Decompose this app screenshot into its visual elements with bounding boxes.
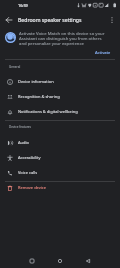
- staticText: Activate Voice Match on this device so y…: [19, 30, 108, 46]
- staticText: General: [9, 65, 21, 69]
- button[interactable]: Recent apps: [25, 254, 39, 268]
- button[interactable]: Activate: [93, 49, 113, 56]
- staticText: Activate: [95, 50, 111, 55]
- button[interactable]: Accessibility: [0, 150, 120, 165]
- staticText: Device features: [9, 125, 32, 129]
- staticText: Voice calls: [18, 170, 38, 175]
- staticText: 16:59: [18, 3, 28, 8]
- button[interactable]: Voice calls: [0, 165, 120, 180]
- button[interactable]: Navigate up: [2, 13, 15, 26]
- staticText: Device information: [18, 79, 54, 84]
- button[interactable]: Home: [53, 254, 67, 268]
- staticText: Remove device: [18, 185, 47, 190]
- button[interactable]: More options: [105, 13, 118, 26]
- staticText: Audio: [18, 140, 29, 145]
- staticText: Recognition & sharing: [18, 94, 60, 99]
- staticText: Accessibility: [18, 155, 41, 160]
- button[interactable]: Audio: [0, 135, 120, 150]
- staticText: Notifications & digital wellbeing: [18, 109, 78, 114]
- button[interactable]: Remove device: [0, 180, 120, 195]
- staticText: Bedroom speaker settings: [18, 16, 82, 23]
- button[interactable]: Device information: [0, 74, 120, 89]
- button[interactable]: Notifications & digital wellbeing: [0, 104, 120, 119]
- button[interactable]: Back: [81, 254, 95, 268]
- button[interactable]: Recognition & sharing: [0, 89, 120, 104]
